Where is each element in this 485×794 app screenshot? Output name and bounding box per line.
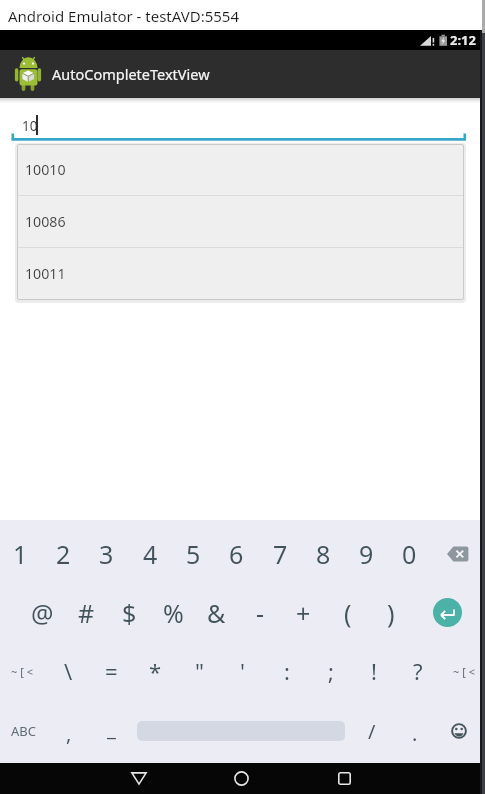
button[interactable]: % bbox=[152, 590, 195, 636]
staticText: ! bbox=[371, 656, 377, 686]
button[interactable]: , bbox=[47, 710, 90, 756]
button[interactable]: ABC bbox=[2, 708, 45, 754]
button[interactable]: + bbox=[282, 590, 325, 636]
button[interactable]: 5 bbox=[172, 531, 215, 577]
button[interactable]: ; bbox=[309, 648, 352, 694]
button[interactable]: & bbox=[195, 590, 238, 636]
button[interactable]: ' bbox=[221, 648, 264, 694]
staticText: = bbox=[105, 656, 118, 686]
staticText: ~ [ < bbox=[453, 664, 475, 679]
button[interactable]: # bbox=[65, 590, 108, 636]
button[interactable]: 7 bbox=[259, 531, 302, 577]
button[interactable]: 9 bbox=[345, 531, 388, 577]
button[interactable] bbox=[437, 531, 479, 576]
staticText: 1 bbox=[13, 537, 28, 571]
staticText: 3 bbox=[99, 537, 114, 571]
staticText: 10086 bbox=[25, 212, 66, 231]
button[interactable]: " bbox=[178, 648, 221, 694]
button[interactable]: : bbox=[265, 648, 308, 694]
staticText: ABC bbox=[11, 722, 36, 740]
staticText: 9 bbox=[359, 537, 374, 571]
staticText: ) bbox=[387, 596, 395, 630]
staticText: # bbox=[78, 596, 95, 630]
button[interactable]: $ bbox=[108, 590, 151, 636]
button[interactable]: ( bbox=[326, 590, 369, 636]
staticText: 10010 bbox=[25, 160, 66, 179]
button[interactable]: ? bbox=[396, 648, 439, 694]
staticText: 4 bbox=[143, 537, 158, 571]
button[interactable]: 0 bbox=[388, 531, 431, 577]
staticText: & bbox=[207, 596, 226, 630]
staticText: AutoCompleteTextView bbox=[52, 64, 210, 84]
button[interactable]: \ bbox=[47, 648, 90, 694]
button[interactable] bbox=[444, 716, 474, 746]
staticText: % bbox=[163, 596, 184, 630]
button[interactable]: ! bbox=[352, 648, 395, 694]
staticText: 10 bbox=[22, 117, 38, 135]
staticText: 6 bbox=[229, 537, 244, 571]
staticText: ( bbox=[344, 596, 352, 630]
staticText: : bbox=[284, 656, 290, 686]
staticText: 7 bbox=[273, 537, 288, 571]
button[interactable]: 10086 bbox=[17, 196, 464, 247]
staticText: , bbox=[66, 720, 72, 747]
button[interactable]: 10011 bbox=[17, 248, 464, 299]
staticText: - bbox=[256, 596, 265, 630]
button[interactable]: * bbox=[134, 648, 177, 694]
staticText: _ bbox=[107, 715, 116, 742]
staticText: 2:12 bbox=[450, 31, 476, 49]
button[interactable] bbox=[221, 763, 261, 794]
staticText: ~ [ < bbox=[11, 664, 33, 679]
staticText: $ bbox=[122, 596, 137, 630]
staticText: . bbox=[412, 720, 418, 747]
button[interactable] bbox=[433, 598, 462, 627]
button[interactable]: 10010 bbox=[17, 144, 464, 195]
button[interactable]: 6 bbox=[215, 531, 258, 577]
button[interactable]: . bbox=[393, 710, 436, 756]
button[interactable]: _ bbox=[90, 705, 133, 751]
button[interactable]: AutoCompleteTextView bbox=[0, 50, 480, 98]
staticText: ' bbox=[240, 656, 245, 686]
button[interactable]: 1 bbox=[0, 531, 42, 577]
staticText: ? bbox=[413, 656, 423, 686]
staticText: \ bbox=[64, 656, 73, 686]
button[interactable]: ~ [ < bbox=[442, 648, 485, 694]
staticText: 0 bbox=[402, 537, 417, 571]
button[interactable]: - bbox=[239, 590, 282, 636]
staticText: 2 bbox=[56, 537, 71, 571]
staticText: * bbox=[149, 656, 162, 686]
staticText: / bbox=[368, 718, 376, 745]
button[interactable]: 2 bbox=[42, 531, 85, 577]
button[interactable]: ~ [ < bbox=[0, 648, 43, 694]
button[interactable]: 8 bbox=[302, 531, 345, 577]
staticText: ; bbox=[328, 656, 334, 686]
staticText: 10011 bbox=[25, 264, 66, 283]
button[interactable] bbox=[324, 763, 364, 794]
button[interactable]: 3 bbox=[85, 531, 128, 577]
staticText: @ bbox=[31, 596, 54, 630]
staticText: 5 bbox=[186, 537, 201, 571]
button[interactable]: ) bbox=[369, 590, 412, 636]
staticText: 8 bbox=[316, 537, 331, 571]
button[interactable]: @ bbox=[21, 590, 64, 636]
button[interactable] bbox=[119, 763, 159, 794]
staticText: Android Emulator - testAVD:5554 bbox=[8, 6, 240, 26]
staticText: " bbox=[195, 656, 204, 686]
staticText: + bbox=[296, 596, 311, 630]
button[interactable]: 10 bbox=[8, 108, 468, 144]
button[interactable]: = bbox=[90, 648, 133, 694]
button[interactable]: / bbox=[350, 708, 393, 754]
button[interactable]: 4 bbox=[129, 531, 172, 577]
